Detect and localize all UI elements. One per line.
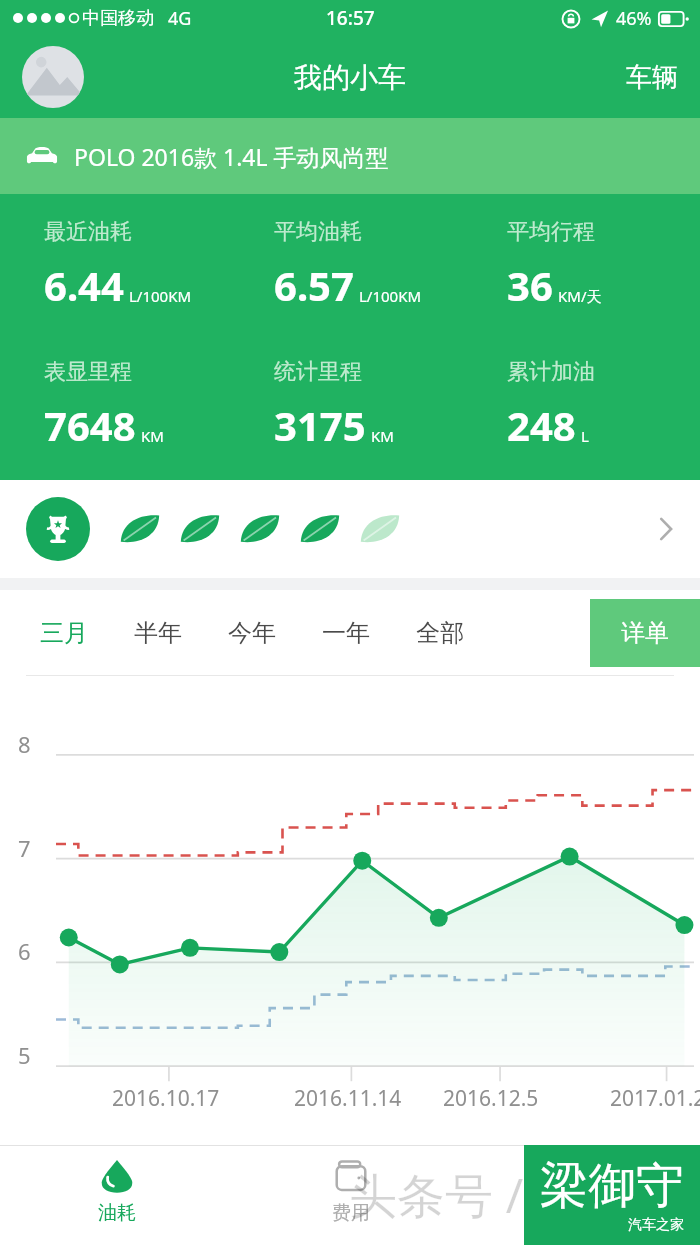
staticText: 车辆 <box>626 61 678 94</box>
staticText: KM <box>141 426 164 446</box>
staticText: 3175 <box>274 398 366 452</box>
staticText: 6.57 <box>274 258 354 312</box>
staticText: KM/天 <box>558 286 602 306</box>
staticText: 头条号 / <box>349 1162 524 1228</box>
button[interactable]: 平均行程 <box>467 218 700 312</box>
staticText: 8 <box>18 729 31 759</box>
staticText: 2016.10.17 <box>112 1084 220 1113</box>
staticText: L/100KM <box>129 286 192 306</box>
button[interactable]: 今年 <box>212 600 292 666</box>
staticText: 详单 <box>621 618 669 648</box>
staticText: 6.44 <box>44 258 124 312</box>
staticText: 梁御守 <box>540 1156 684 1216</box>
staticText: 2017.01.2 <box>610 1084 700 1113</box>
staticText: 5 <box>18 1040 31 1070</box>
staticText: 费用 <box>332 1201 370 1225</box>
staticText: 2016.11.14 <box>294 1084 402 1113</box>
staticText: KM <box>371 426 394 446</box>
button[interactable]: 详单 <box>590 599 700 667</box>
button[interactable]: 油耗 <box>0 1145 234 1245</box>
button[interactable]: 费用 <box>234 1145 467 1245</box>
button[interactable]: 平均油耗 <box>234 218 467 312</box>
staticText: L/100KM <box>359 286 422 306</box>
button[interactable]: 发现 <box>467 1145 700 1245</box>
staticText: 4G <box>168 6 192 31</box>
staticText: 6 <box>18 936 31 966</box>
staticText: 表显里程 <box>44 358 132 386</box>
staticText: 汽车之家 <box>628 1216 684 1234</box>
button[interactable]: User avatar <box>22 46 84 108</box>
staticText: 中国移动 <box>82 7 154 30</box>
button[interactable]: Fuel consumption chart <box>0 676 700 1145</box>
staticText: 发现 <box>565 1201 603 1225</box>
staticText: 平均行程 <box>507 218 595 246</box>
button[interactable]: 全部 <box>400 600 480 666</box>
staticText: 一年 <box>322 618 370 648</box>
button[interactable]: 统计里程 <box>234 358 467 452</box>
button[interactable]: Eco driving badges <box>0 480 700 578</box>
staticText: 油耗 <box>98 1201 136 1225</box>
staticText: 半年 <box>134 618 182 648</box>
staticText: L <box>581 426 589 446</box>
staticText: 7 <box>18 833 31 863</box>
button[interactable]: 表显里程 <box>0 358 234 452</box>
button[interactable]: 一年 <box>306 600 386 666</box>
button[interactable]: 半年 <box>118 600 198 666</box>
staticText: 16:57 <box>326 5 375 31</box>
staticText: 统计里程 <box>274 358 362 386</box>
staticText: 46% <box>616 6 652 31</box>
staticText: 累计加油 <box>507 358 595 386</box>
staticText: 36 <box>507 258 553 312</box>
button[interactable]: 最近油耗 <box>0 218 234 312</box>
staticText: 248 <box>507 398 576 452</box>
staticText: POLO 2016款 1.4L 手动风尚型 <box>74 141 389 172</box>
staticText: 7648 <box>44 398 136 452</box>
staticText: 最近油耗 <box>44 218 132 246</box>
button[interactable]: 累计加油 <box>467 358 700 452</box>
button[interactable]: POLO 2016款 1.4L 手动风尚型 <box>0 118 700 194</box>
staticText: 全部 <box>416 618 464 648</box>
button[interactable]: 车辆 <box>604 45 700 110</box>
staticText: 我的小车 <box>294 60 406 95</box>
staticText: 三月 <box>40 618 88 648</box>
staticText: 2016.12.5 <box>443 1084 539 1113</box>
button[interactable]: 三月 <box>24 600 104 666</box>
staticText: 今年 <box>228 618 276 648</box>
staticText: 平均油耗 <box>274 218 362 246</box>
